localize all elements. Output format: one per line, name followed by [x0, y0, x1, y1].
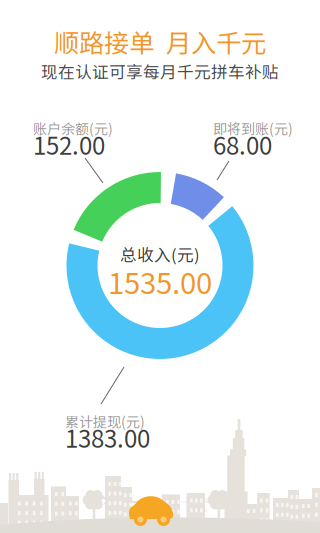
- staticText: 累计提现(元): [65, 411, 145, 431]
- staticText: 即将到账(元): [213, 118, 293, 138]
- staticText: 总收入(元): [120, 242, 200, 266]
- staticText: 68.00: [213, 127, 272, 162]
- staticText: 现在认证可享每月千元拼车补贴: [41, 59, 279, 83]
- staticText: 账户余额(元): [33, 118, 113, 138]
- staticText: 顺路接单 月入千元: [54, 23, 266, 60]
- staticText: 1383.00: [65, 420, 150, 455]
- staticText: 152.00: [33, 127, 105, 162]
- staticText: 1535.00: [108, 260, 212, 302]
